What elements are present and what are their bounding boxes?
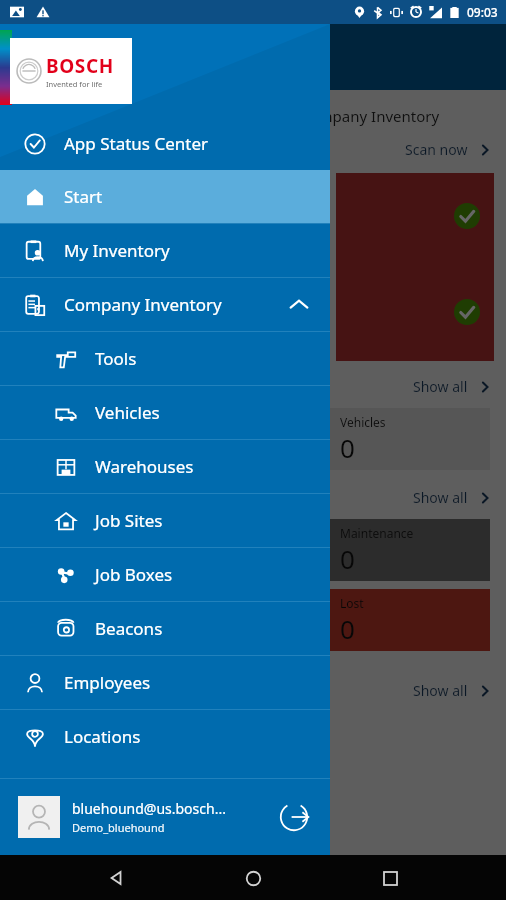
staticText: BOSCH xyxy=(46,53,114,79)
staticText: Show all xyxy=(413,488,468,507)
staticText: Job Sites xyxy=(95,509,163,532)
staticText: Lost xyxy=(340,595,364,611)
staticText: Tools xyxy=(95,347,137,370)
staticText: Start xyxy=(64,185,103,208)
staticText: 09:03 xyxy=(467,4,498,20)
staticText: Invented for life xyxy=(46,79,103,89)
staticText: My Inventory xyxy=(64,239,170,262)
staticText: Vehicles xyxy=(340,414,386,430)
staticText: bluehound@us.bosch... xyxy=(72,799,226,818)
staticText: Vehicles xyxy=(95,401,160,424)
staticText: Job Boxes xyxy=(95,563,173,586)
button[interactable]: Employees xyxy=(0,656,330,709)
button[interactable]: Company Inventory xyxy=(0,278,330,331)
staticText: Company Inventory xyxy=(64,293,222,316)
button[interactable]: Tools xyxy=(0,332,330,385)
button[interactable]: Sign out xyxy=(276,799,312,835)
staticText: Show all xyxy=(413,681,468,700)
button[interactable]: Locations xyxy=(0,710,330,763)
button[interactable]: Job Sites xyxy=(0,494,330,547)
button[interactable]: bluehound@us.bosch... xyxy=(0,779,330,855)
staticText: Demo_bluehound xyxy=(72,820,165,835)
staticText: Employees xyxy=(64,671,151,694)
button[interactable]: Vehicles xyxy=(330,408,490,470)
button[interactable]: Recent apps xyxy=(370,858,410,898)
button[interactable]: My Inventory xyxy=(0,224,330,277)
staticText: Warehouses xyxy=(95,455,194,478)
button[interactable]: Start xyxy=(0,170,330,223)
staticText: 0 xyxy=(340,541,355,576)
button[interactable]: Beacons xyxy=(0,602,330,655)
staticText: Maintenance xyxy=(340,525,414,541)
staticText: Show all xyxy=(413,377,468,396)
button[interactable]: App Status Center xyxy=(0,117,330,170)
staticText: 0 xyxy=(340,430,355,465)
button[interactable]: Warehouses xyxy=(0,440,330,493)
button[interactable]: Back xyxy=(97,858,137,898)
staticText: App Status Center xyxy=(64,132,208,155)
staticText: 0 xyxy=(340,611,355,646)
button[interactable]: Home xyxy=(233,858,273,898)
button[interactable]: Job Boxes xyxy=(0,548,330,601)
button[interactable]: Lost xyxy=(330,589,490,651)
staticText: Scan now xyxy=(405,140,468,159)
button[interactable]: Vehicles xyxy=(0,386,330,439)
staticText: Company Inventory xyxy=(300,106,440,126)
staticText: Beacons xyxy=(95,617,163,640)
staticText: Locations xyxy=(64,725,141,748)
button[interactable]: Maintenance xyxy=(330,519,490,581)
